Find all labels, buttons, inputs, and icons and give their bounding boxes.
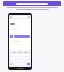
button[interactable]: Send [27, 63, 30, 65]
button[interactable] [10, 23, 15, 25]
button[interactable]: Menu [8, 13, 32, 70]
button[interactable] [3, 1, 61, 6]
button[interactable] [14, 35, 30, 38]
